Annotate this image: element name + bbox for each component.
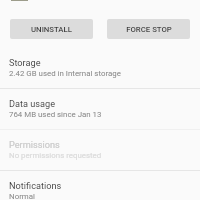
button[interactable]: Data usage	[0, 89, 200, 129]
button[interactable]: Storage	[0, 48, 200, 88]
staticText: Normal	[9, 192, 35, 200]
staticText: UNINSTALL	[31, 25, 72, 34]
button[interactable]: FORCE STOP	[107, 19, 190, 39]
staticText: FORCE STOP	[126, 25, 172, 34]
staticText: Data usage	[9, 98, 56, 109]
staticText: Permissions	[9, 139, 60, 150]
button[interactable]: Notifications	[0, 171, 200, 200]
button[interactable]: Permissions	[0, 130, 200, 170]
staticText: Storage	[9, 57, 41, 68]
staticText: 764 MB used since Jan 13	[9, 110, 102, 119]
staticText: 2.42 GB used in Internal storage	[9, 69, 121, 78]
staticText: Notifications	[9, 180, 62, 191]
staticText: No permissions requested	[9, 151, 102, 160]
button[interactable]: UNINSTALL	[10, 19, 93, 39]
